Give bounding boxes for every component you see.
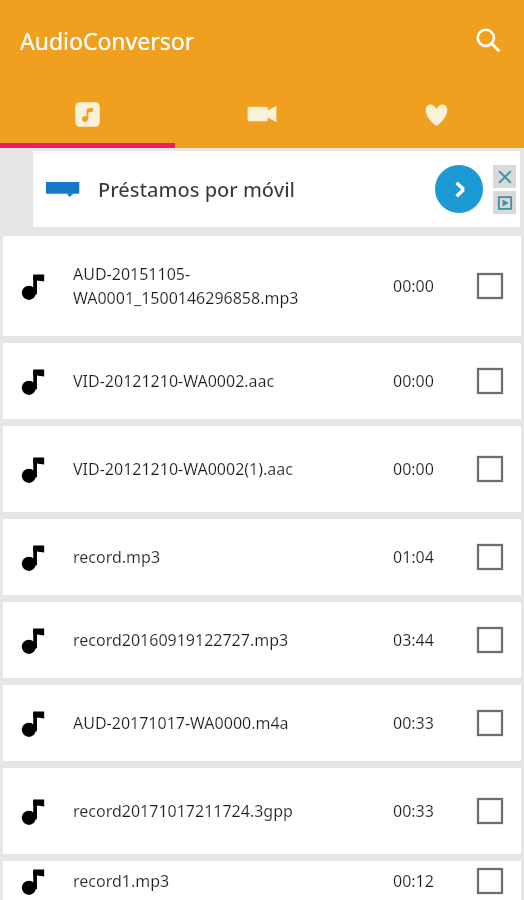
staticText: VID-20121210-WA0002(1).aac [73,458,293,480]
button[interactable]: Select AUD-20171017-WA0000.m4a [459,685,521,761]
staticText: 03:44 [393,629,459,651]
staticText: AUD-20151105-WA0001_1500146296858.mp3 [73,263,387,309]
button[interactable]: Select record.mp3 [459,519,521,595]
staticText: 01:04 [393,546,459,568]
staticText: 00:00 [393,275,459,297]
button[interactable]: VID-20121210-WA0002(1).aac [3,426,521,512]
button[interactable]: Video [174,80,349,148]
staticText: Préstamos por móvil [98,176,296,203]
button[interactable]: record1.mp3 [3,861,521,900]
staticText: AUD-20171017-WA0000.m4a [73,712,289,734]
staticText: AudioConversor [20,25,195,56]
staticText: 00:33 [393,800,459,822]
button[interactable]: Préstamos por móvil [33,151,520,227]
button[interactable]: record20160919122727.mp3 [3,602,521,678]
staticText: record.mp3 [73,546,161,568]
button[interactable]: record20171017211724.3gpp [3,768,521,854]
staticText: record20160919122727.mp3 [73,629,289,651]
button[interactable]: Favorites [349,80,524,148]
button[interactable]: VID-20121210-WA0002.aac [3,343,521,419]
button[interactable]: Ad info [493,191,516,214]
button[interactable]: record.mp3 [3,519,521,595]
button[interactable]: Select record1.mp3 [459,861,521,900]
staticText: record20171017211724.3gpp [73,800,293,822]
button[interactable]: AUD-20171017-WA0000.m4a [3,685,521,761]
button[interactable]: Search [464,16,512,64]
staticText: VID-20121210-WA0002.aac [73,370,275,392]
button[interactable]: AUD-20151105-WA0001_1500146296858.mp3 [3,236,521,336]
button[interactable]: Select VID-20121210-WA0002(1).aac [459,426,521,512]
button[interactable]: Audio [0,80,174,148]
staticText: 00:33 [393,712,459,734]
staticText: 00:00 [393,370,459,392]
button[interactable]: Select record20171017211724.3gpp [459,768,521,854]
staticText: 00:00 [393,458,459,480]
button[interactable]: Select AUD-20151105-WA0001_1500146296858… [459,236,521,336]
staticText: record1.mp3 [73,870,170,892]
button[interactable]: Select VID-20121210-WA0002.aac [459,343,521,419]
staticText: 00:12 [393,870,459,892]
button[interactable]: Close ad [493,165,516,188]
button[interactable]: Select record20160919122727.mp3 [459,602,521,678]
